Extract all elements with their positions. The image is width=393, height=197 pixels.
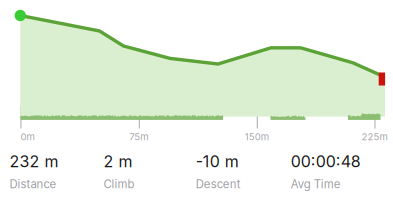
button[interactable]: 232 m: [10, 152, 103, 191]
staticText: Descent: [196, 177, 241, 191]
staticText: 225m: [361, 131, 387, 143]
staticText: Climb: [103, 177, 134, 191]
staticText: 150m: [245, 131, 269, 143]
staticText: 00:00:48: [291, 152, 361, 171]
staticText: 75m: [129, 131, 148, 143]
staticText: 232 m: [10, 152, 59, 171]
button[interactable]: 2 m: [103, 152, 196, 191]
staticText: Avg Time: [291, 177, 341, 191]
staticText: Distance: [10, 177, 57, 191]
staticText: -10 m: [196, 152, 239, 171]
button[interactable]: -10 m: [196, 152, 291, 191]
button[interactable]: 00:00:48: [291, 152, 381, 191]
staticText: 2 m: [103, 152, 132, 171]
staticText: 0m: [21, 131, 35, 143]
